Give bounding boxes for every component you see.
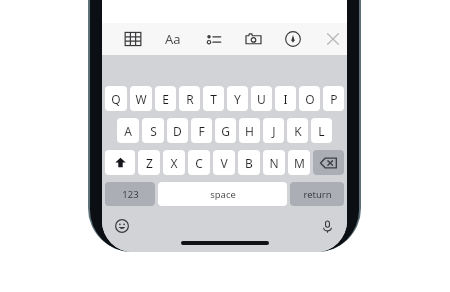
staticText: V [220,155,228,171]
staticText: N [269,155,279,171]
staticText: space [210,188,236,201]
button[interactable]: X [163,150,185,175]
button[interactable]: Z [138,150,160,175]
button[interactable]: H [239,118,260,143]
staticText: Z [146,155,153,171]
button[interactable]: Camera [242,28,264,50]
staticText: K [294,123,302,139]
button[interactable]: E [155,86,176,111]
staticText: A [124,123,132,139]
button[interactable]: S [142,118,164,143]
button[interactable]: 123 [105,182,155,206]
staticText: 123 [122,188,139,201]
staticText: B [245,155,253,171]
button[interactable]: Dictation [317,216,337,236]
button[interactable]: F [191,118,212,143]
button[interactable]: G [215,118,236,143]
staticText: M [294,155,305,171]
button[interactable]: D [167,118,188,143]
button[interactable]: return [290,182,344,206]
staticText: F [198,123,205,139]
button[interactable]: Emoji [112,216,132,236]
button[interactable]: M [288,150,310,175]
button[interactable]: I [275,86,296,111]
staticText: Y [234,91,241,107]
button[interactable]: Insert table [122,28,144,50]
staticText: Q [111,91,121,107]
staticText: C [195,155,203,171]
staticText: S [150,123,157,139]
button[interactable]: O [299,86,320,111]
button[interactable]: A [117,118,139,143]
button[interactable]: space [158,182,287,206]
staticText: Aa [165,30,181,48]
button[interactable]: Markup [282,28,304,50]
button[interactable]: Backspace [313,150,344,175]
staticText: L [318,123,325,139]
staticText: H [245,123,254,139]
button[interactable]: W [130,86,152,111]
button[interactable]: N [263,150,285,175]
staticText: U [257,91,266,107]
button[interactable]: P [323,86,344,111]
button[interactable]: Text format [162,28,184,50]
staticText: E [162,91,169,107]
button[interactable]: R [179,86,200,111]
staticText: I [283,91,288,107]
button[interactable]: U [251,86,272,111]
button[interactable]: V [213,150,235,175]
button[interactable]: Shift [105,150,135,175]
staticText: T [210,91,217,107]
button[interactable]: B [238,150,260,175]
button[interactable]: K [287,118,308,143]
staticText: G [221,123,230,139]
staticText: O [305,91,315,107]
button[interactable]: T [203,86,224,111]
button[interactable]: L [311,118,332,143]
staticText: R [186,91,194,107]
staticText: J [272,123,276,139]
staticText: W [135,91,147,107]
button[interactable]: Close [322,28,344,50]
button[interactable]: C [188,150,210,175]
staticText: return [303,188,332,201]
staticText: X [170,155,178,171]
staticText: P [330,91,338,107]
button[interactable]: Q [105,86,127,111]
button[interactable]: Checklist [202,28,224,50]
button[interactable]: Y [227,86,248,111]
button[interactable]: J [263,118,284,143]
staticText: D [173,123,182,139]
